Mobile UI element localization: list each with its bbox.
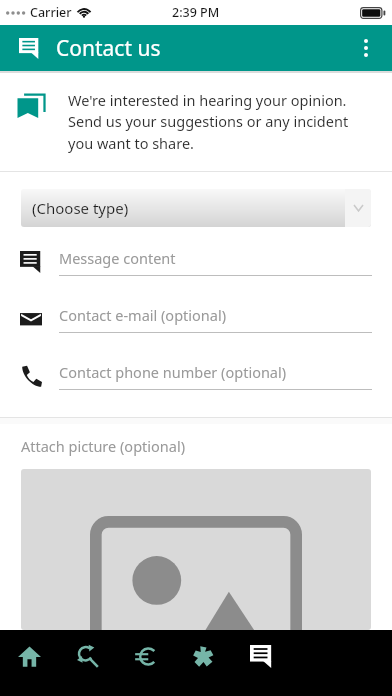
button[interactable]: Home — [0, 630, 58, 696]
button[interactable]: Prices — [116, 630, 174, 696]
button[interactable]: Messages — [12, 31, 46, 65]
staticText: (Choose type) — [32, 198, 129, 218]
staticText: Carrier — [30, 4, 72, 21]
staticText: Contact us — [56, 34, 161, 63]
button[interactable]: Extras — [174, 630, 232, 696]
button[interactable]: Message content — [20, 248, 372, 276]
button[interactable]: Choose type — [21, 189, 371, 227]
button[interactable]: Contact us — [232, 630, 290, 696]
button[interactable]: Contact e-mail (optional) — [20, 305, 372, 333]
staticText: Contact phone number (optional) — [59, 362, 287, 382]
button[interactable]: Attach picture — [21, 469, 371, 630]
button[interactable]: Contact phone number (optional) — [20, 362, 372, 390]
staticText: 2:39 PM — [172, 4, 220, 21]
button[interactable]: Search — [58, 630, 116, 696]
staticText: Message content — [59, 248, 176, 268]
button[interactable]: More options — [348, 30, 384, 66]
staticText: We're interested in hearing your opinion… — [68, 90, 374, 154]
staticText: Attach picture (optional) — [21, 436, 185, 456]
staticText: Contact e-mail (optional) — [59, 305, 226, 325]
